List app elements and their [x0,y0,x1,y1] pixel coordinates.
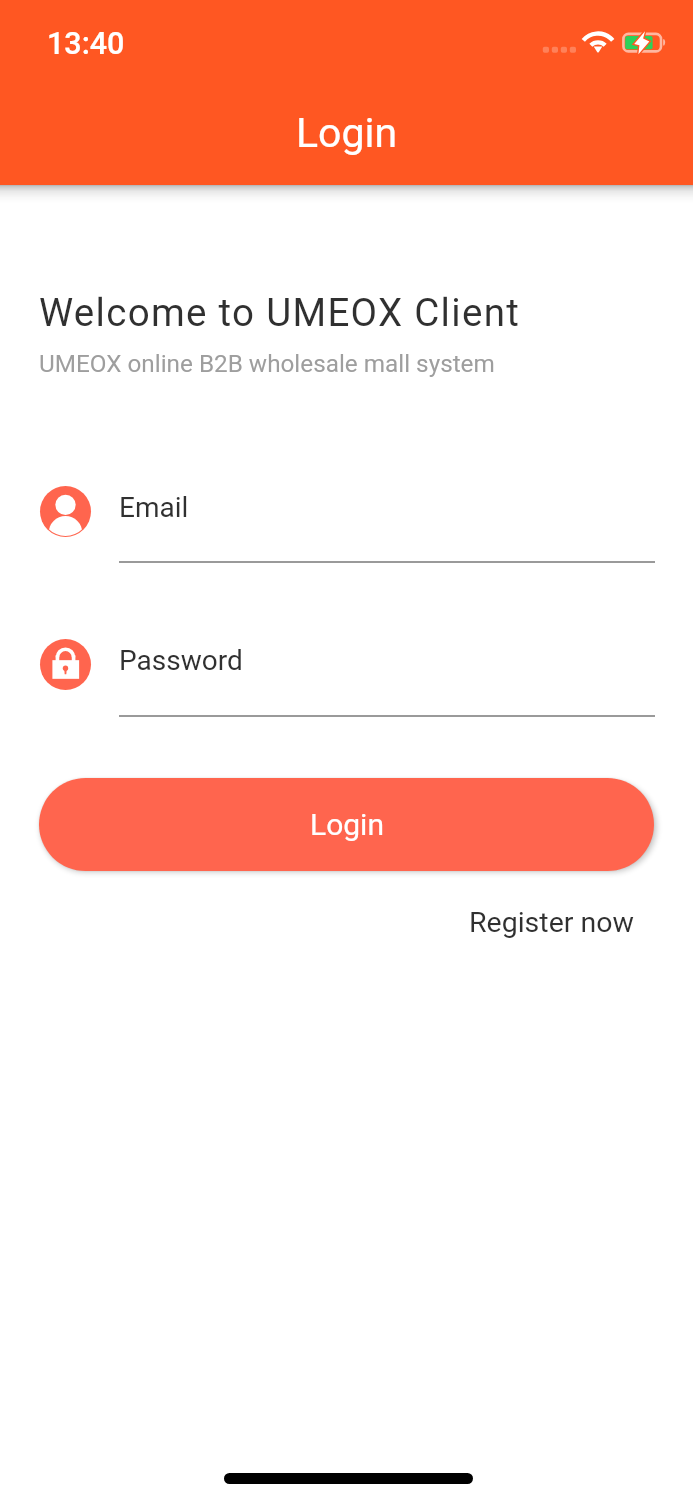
button[interactable]: Password [119,633,655,717]
staticText: Register now [469,906,634,939]
button[interactable]: Email [119,480,655,563]
other: Status icons [540,28,670,58]
button[interactable]: Login [39,778,654,871]
staticText: Login [0,109,693,157]
staticText: Password [119,644,243,677]
staticText: Welcome to UMEOX Client [39,290,521,335]
staticText: UMEOX online B2B wholesale mall system [39,349,495,377]
staticText: Email [119,491,189,524]
staticText: Login [310,807,384,842]
button[interactable]: Register now [460,900,643,945]
staticText: 13:40 [47,26,125,62]
